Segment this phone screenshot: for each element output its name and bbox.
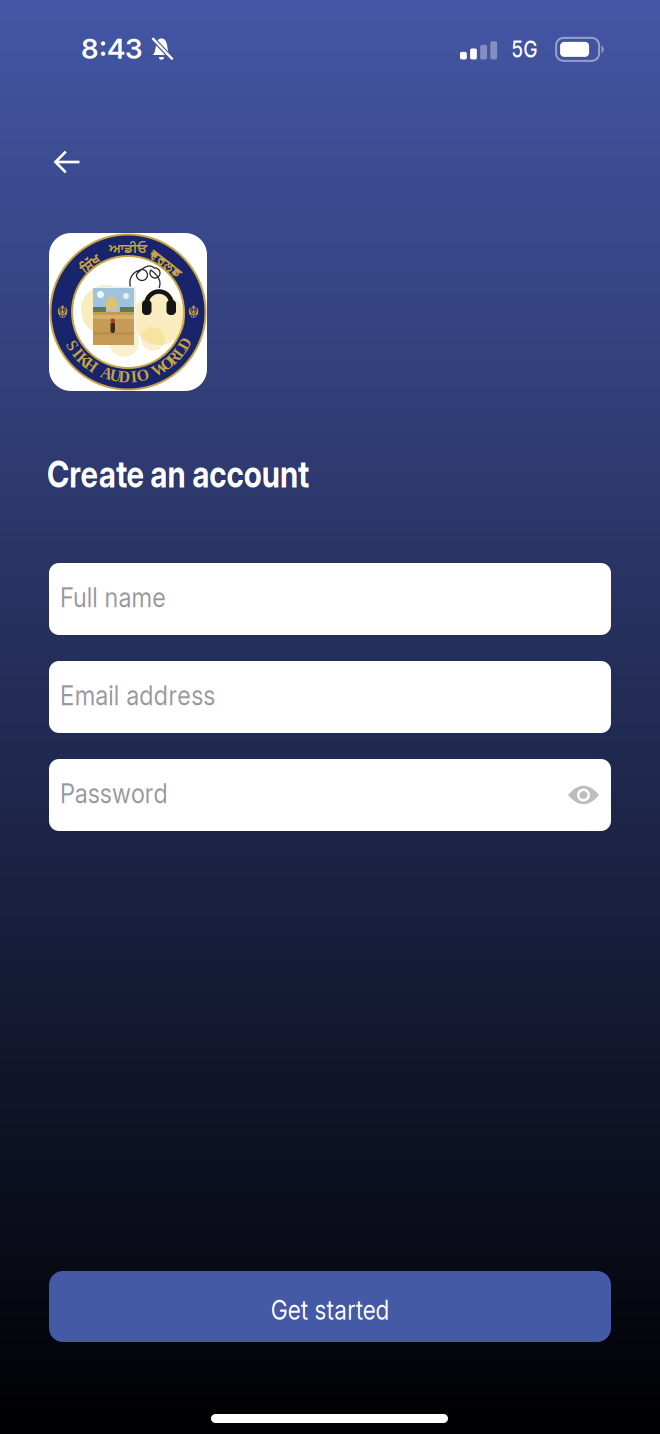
staticText: 8:43 bbox=[81, 32, 143, 65]
button[interactable]: Email address bbox=[49, 661, 611, 733]
staticText bbox=[149, 364, 153, 381]
staticText: O bbox=[137, 366, 149, 384]
staticText: R bbox=[168, 349, 180, 367]
staticText: H bbox=[85, 356, 97, 374]
staticText: 5G bbox=[509, 36, 540, 63]
staticText: U bbox=[110, 367, 122, 385]
staticText: K bbox=[78, 351, 90, 368]
button[interactable]: Password bbox=[49, 759, 611, 831]
button[interactable]: Back bbox=[43, 140, 91, 184]
staticText: ਵਰਲਡ bbox=[147, 257, 184, 270]
staticText: S bbox=[68, 337, 77, 354]
staticText: W bbox=[151, 360, 167, 378]
staticText: I bbox=[74, 344, 80, 362]
staticText: A bbox=[101, 365, 113, 382]
staticText: Create an account bbox=[47, 452, 367, 496]
staticText: D bbox=[119, 368, 131, 386]
staticText: I bbox=[131, 368, 137, 386]
staticText bbox=[96, 361, 100, 379]
button[interactable]: Get started bbox=[49, 1271, 611, 1342]
staticText: Email address bbox=[60, 678, 243, 711]
staticText: ☬ bbox=[56, 302, 68, 322]
staticText: Get started bbox=[261, 1294, 399, 1326]
staticText: ☬ bbox=[187, 302, 199, 322]
staticText: Password bbox=[60, 776, 187, 809]
staticText: Full name bbox=[60, 580, 184, 613]
button[interactable]: Full name bbox=[49, 563, 611, 635]
staticText: L bbox=[174, 342, 185, 360]
button[interactable]: Show password bbox=[560, 778, 607, 812]
staticText: ਆਡੀਓ bbox=[109, 242, 147, 255]
staticText: O bbox=[161, 355, 173, 373]
staticText: D bbox=[179, 335, 191, 352]
staticText: ਸਿੱਖ bbox=[79, 257, 101, 270]
